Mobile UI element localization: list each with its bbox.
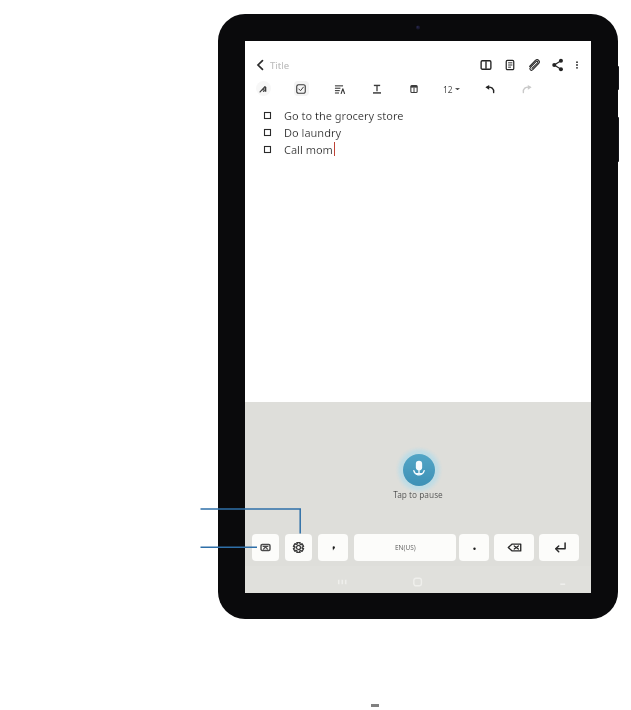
button[interactable]: Tap to pause voice input (395, 446, 443, 494)
staticText: Do laundry (284, 125, 342, 140)
button[interactable]: Attach (526, 57, 542, 73)
button[interactable]: Undo (483, 82, 497, 96)
button[interactable]: Go to the grocery store (264, 107, 404, 123)
button[interactable]: Back (252, 57, 268, 73)
button[interactable]: Redo (520, 82, 534, 96)
button[interactable]: Enter (539, 534, 579, 561)
button[interactable]: Document (502, 57, 518, 73)
button[interactable]: Comma (318, 534, 348, 561)
button[interactable]: Split view (478, 57, 494, 73)
button[interactable]: Keyboard (252, 534, 279, 561)
button[interactable]: Draw (257, 82, 271, 96)
button[interactable]: Paragraph (332, 82, 346, 96)
button[interactable]: Checklist (294, 82, 308, 96)
button[interactable]: More options (570, 58, 584, 72)
button[interactable]: Do laundry (264, 124, 342, 140)
button[interactable]: 12 (443, 84, 460, 94)
staticText: Go to the grocery store (284, 108, 404, 123)
button[interactable]: Call mom (264, 141, 335, 157)
button[interactable]: Period (459, 534, 489, 561)
staticText: EN(US) (395, 543, 416, 552)
button[interactable]: Text style (370, 82, 384, 96)
button[interactable]: Share (550, 57, 566, 73)
button[interactable]: Settings (285, 534, 312, 561)
staticText: 12 (443, 84, 453, 94)
staticText: Call mom (284, 142, 333, 157)
button[interactable]: EN(US) (354, 534, 456, 561)
staticText: Tap to pause (393, 489, 443, 500)
button[interactable]: Backspace (494, 534, 534, 561)
button[interactable]: Insert table (407, 82, 421, 96)
staticText: Title (270, 59, 290, 72)
